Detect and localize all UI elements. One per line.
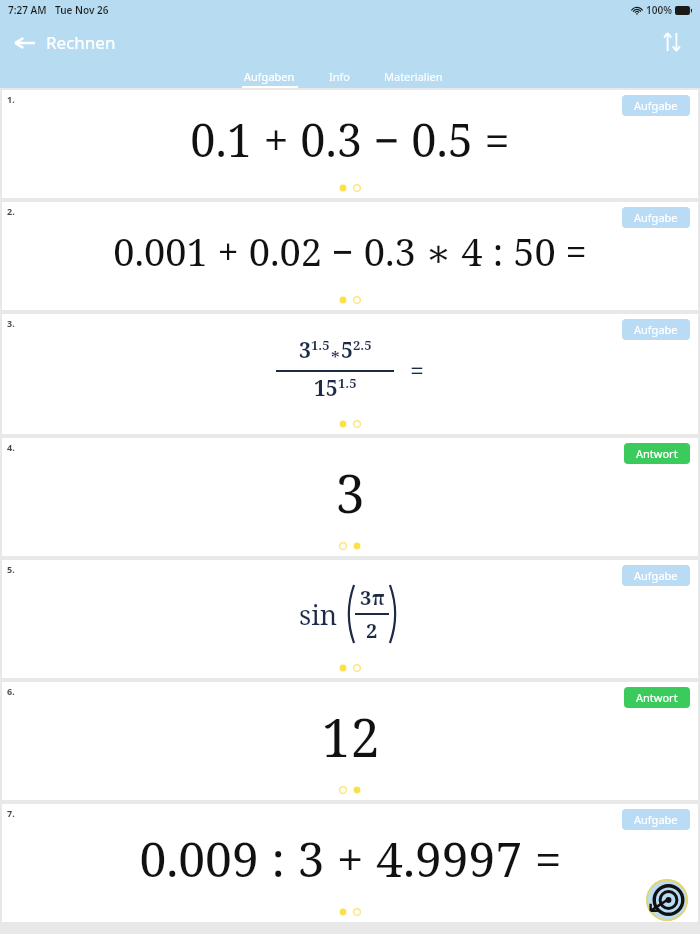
staticText: 2. (7, 205, 15, 217)
button[interactable]: 4. (2, 438, 698, 556)
button[interactable]: Aufgabe (622, 207, 690, 228)
button[interactable]: Antwort (624, 687, 690, 708)
staticText: Aufgaben (244, 69, 295, 84)
button[interactable]: Sort (654, 24, 690, 60)
staticText: 0.009 : 3 + 4.9997 = (139, 826, 562, 891)
button[interactable]: Aufgabe (622, 809, 690, 830)
staticText: 2 (366, 617, 378, 644)
staticText: 4. (7, 441, 15, 453)
staticText: 1.5 (338, 374, 357, 392)
button[interactable]: Aufgabe (622, 565, 690, 586)
staticText: 5 (341, 336, 353, 365)
staticText: Aufgabe (634, 322, 678, 337)
button[interactable]: 5. (2, 560, 698, 678)
button[interactable]: Info (325, 67, 354, 88)
staticText: 3 (360, 584, 372, 611)
staticText: 7. (7, 807, 15, 819)
staticText: 3 (335, 457, 365, 528)
button[interactable]: 2. (2, 202, 698, 310)
button[interactable]: Materialien (380, 67, 447, 88)
staticText: 3 (299, 336, 311, 365)
button[interactable]: Antwort (624, 443, 690, 464)
staticText: 0.001 + 0.02 − 0.3 ∗ 4 : 50 = (113, 225, 587, 277)
staticText: 0.1 + 0.3 − 0.5 = (190, 109, 510, 170)
staticText: = (410, 353, 424, 387)
button[interactable]: 3. (2, 314, 698, 434)
button[interactable]: Rechnen (8, 27, 122, 58)
button[interactable]: 1. (2, 90, 698, 198)
button[interactable]: 6. (2, 682, 698, 800)
staticText: Aufgabe (634, 210, 678, 225)
staticText: Rechnen (46, 31, 116, 54)
staticText: 3. (7, 317, 15, 329)
staticText: Aufgabe (634, 98, 678, 113)
button[interactable]: Practice target (646, 879, 688, 921)
staticText: 2.5 (353, 336, 372, 354)
staticText: 7:27 AM (8, 3, 47, 17)
staticText: 100% (646, 3, 672, 17)
staticText: Antwort (636, 690, 678, 705)
staticText: Antwort (636, 446, 678, 461)
staticText: Materialien (384, 69, 443, 84)
staticText: π (372, 585, 385, 611)
button[interactable]: Aufgabe (622, 319, 690, 340)
staticText: 6. (7, 685, 15, 697)
staticText: 1. (7, 93, 15, 105)
staticText: 1.5 (311, 336, 330, 354)
button[interactable]: 7. (2, 804, 698, 922)
button[interactable]: Aufgaben (240, 67, 299, 88)
staticText: 15 (314, 374, 338, 403)
staticText: 5. (7, 563, 15, 575)
staticText: * (331, 345, 340, 368)
staticText: Tue Nov 26 (55, 3, 109, 17)
staticText: 12 (321, 701, 380, 772)
staticText: Aufgabe (634, 812, 678, 827)
button[interactable]: Aufgabe (622, 95, 690, 116)
staticText: Aufgabe (634, 568, 678, 583)
staticText: sin (299, 596, 338, 633)
staticText: Info (329, 69, 350, 84)
